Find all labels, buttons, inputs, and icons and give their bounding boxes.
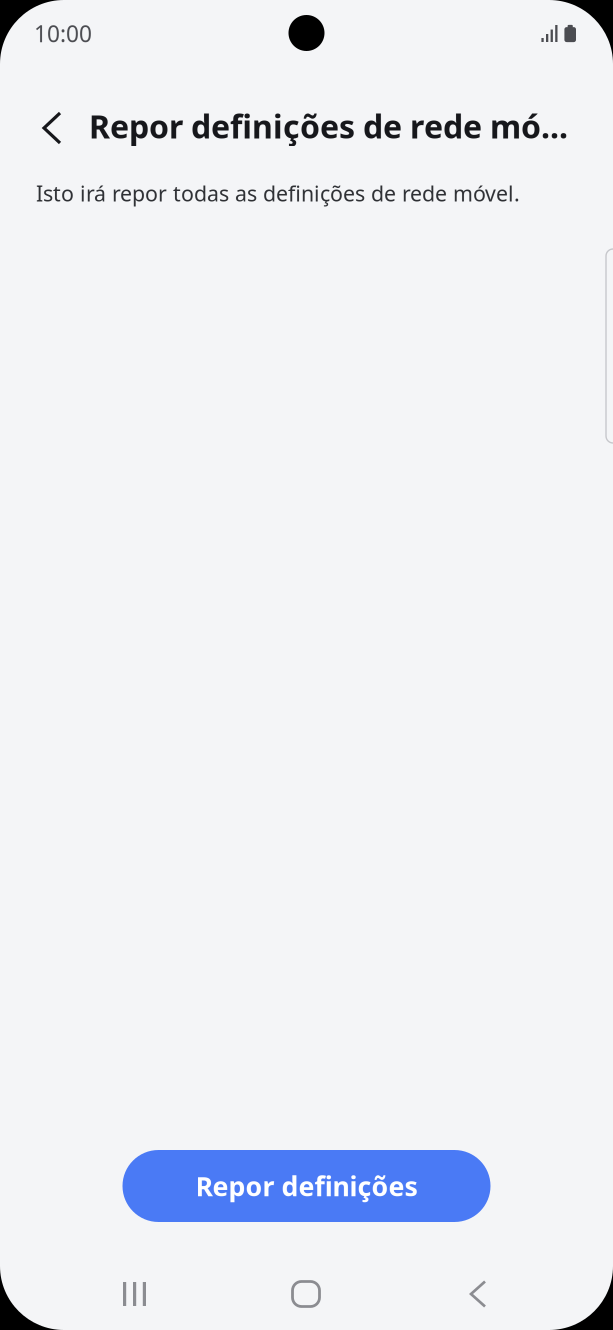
button[interactable]: Repor definições de rede mó...	[0, 66, 613, 186]
button[interactable]: Recent apps	[49, 1270, 220, 1318]
staticText: 10:00	[34, 18, 92, 48]
button[interactable]: Repor definições	[122, 1150, 490, 1222]
staticText: Isto irá repor todas as definições de re…	[36, 179, 520, 207]
staticText: Repor definições	[195, 1168, 417, 1204]
button[interactable]: Back	[392, 1270, 564, 1318]
staticText: Repor definições de rede mó...	[89, 105, 568, 147]
button[interactable]: Home	[220, 1270, 392, 1318]
